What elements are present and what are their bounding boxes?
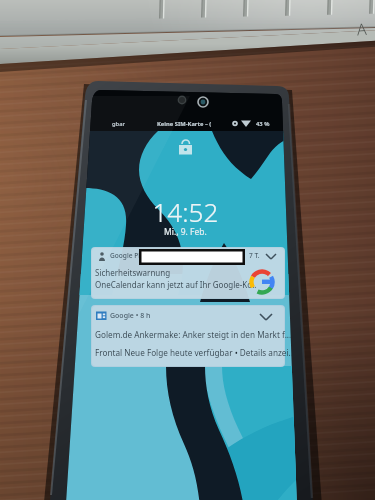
button[interactable] (0, 0, 375, 500)
